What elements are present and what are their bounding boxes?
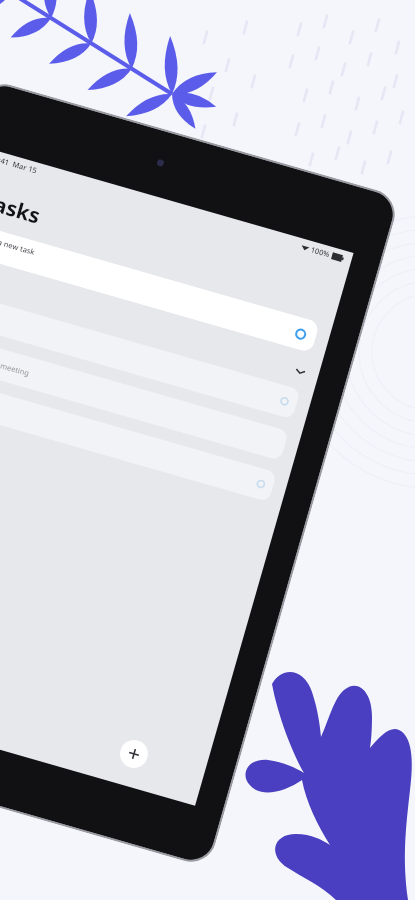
button[interactable]: Today: [0, 261, 309, 382]
staticText: 9:41 Mar 15: [0, 154, 38, 175]
button[interactable]: Weekly team sync meeting: [0, 326, 289, 461]
button[interactable]: Add task: [117, 737, 151, 771]
staticText: Add a new task: [0, 232, 37, 257]
staticText: 100%: [310, 244, 332, 259]
button[interactable]: Read a book: [0, 367, 277, 502]
button[interactable]: Add a new task: [0, 217, 320, 353]
staticText: Tasks: [0, 187, 44, 231]
button[interactable]: Pay bills: [0, 284, 301, 420]
staticText: Weekly team sync meeting: [0, 342, 31, 378]
